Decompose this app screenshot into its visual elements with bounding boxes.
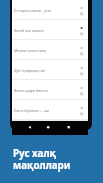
staticText: Дўст кулфатда син — [14, 68, 78, 73]
staticText: Ватан қадри билган — [14, 88, 78, 93]
button[interactable]: Дўст кулфатда син — [12, 60, 88, 79]
button[interactable]: More options — [77, 104, 88, 115]
button[interactable]: More options — [77, 44, 88, 55]
staticText: Ёлғиз йўловчи — ош — [14, 108, 78, 113]
button[interactable]: More options — [77, 24, 88, 35]
staticText: мақоллари — [13, 159, 71, 172]
staticText: Ёз нарса оласан - уста — [14, 8, 78, 13]
staticText: Меҳнат қилса тана — [14, 48, 78, 53]
staticText: Рус халқ — [13, 147, 56, 160]
button[interactable]: More options — [77, 84, 88, 95]
button[interactable]: More options — [77, 64, 88, 75]
button[interactable]: Китоб ақл калити — [12, 20, 88, 39]
staticText: Китоб ақл калити — [14, 28, 78, 33]
button[interactable]: Меҳнат қилса тана — [12, 40, 88, 59]
button[interactable]: More options — [77, 4, 88, 15]
button[interactable]: Ёлғиз йўловчи — ош — [12, 100, 88, 119]
button[interactable]: Ватан қадри билган — [12, 80, 88, 99]
button[interactable]: Ёз нарса оласан - уста — [12, 0, 88, 19]
